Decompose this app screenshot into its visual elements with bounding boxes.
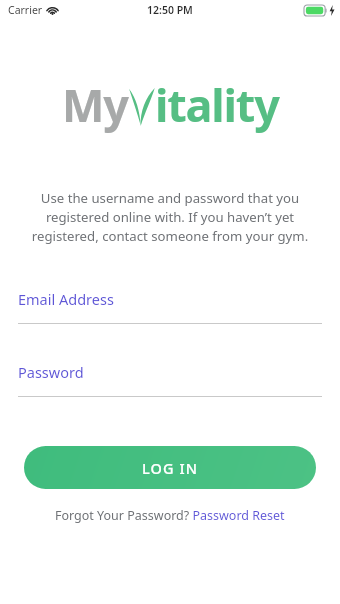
staticText: LOG IN [142,458,199,478]
staticText: 12:50 PM [147,3,193,17]
button[interactable]: Password [0,362,340,397]
button[interactable]: Email Address [0,289,340,324]
staticText: Email Address [18,289,114,309]
button[interactable]: LOG IN [24,446,316,489]
staticText: Use the username and password that you r… [20,189,320,245]
button[interactable]: Forgot Your Password? Password Reset [49,504,291,527]
staticText: itality [155,74,279,135]
staticText: Forgot Your Password? Password Reset [55,507,285,524]
staticText: My [62,74,128,135]
staticText: Password [18,362,84,382]
staticText: Carrier [8,3,43,17]
